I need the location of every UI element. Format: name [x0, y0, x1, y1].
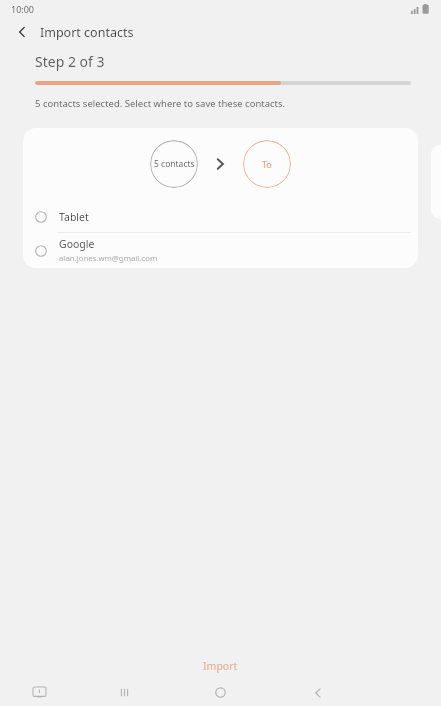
staticText: Google	[59, 237, 95, 251]
staticText: alan.jones.wm@gmail.com	[59, 253, 158, 264]
button[interactable]: Home	[204, 679, 236, 706]
button[interactable]: Back	[302, 679, 334, 706]
staticText: Import	[203, 659, 238, 673]
button[interactable]: Back	[8, 18, 36, 46]
button[interactable]: To	[243, 140, 291, 188]
staticText: To	[262, 158, 272, 170]
staticText: Step 2 of 3	[35, 52, 105, 71]
staticText: 5 contacts	[154, 158, 195, 170]
button[interactable]: Google	[23, 233, 418, 268]
button[interactable]: Hide keyboard	[25, 679, 53, 706]
button[interactable]: Tablet	[23, 200, 418, 233]
button[interactable]: Import	[0, 652, 441, 679]
button[interactable]: 5 contacts	[150, 140, 198, 188]
staticText: 5 contacts selected. Select where to sav…	[35, 97, 286, 110]
button[interactable]: Recent apps	[108, 679, 140, 706]
staticText: 10:00	[11, 3, 35, 15]
staticText: Tablet	[59, 210, 89, 224]
staticText: Import contacts	[40, 24, 134, 41]
